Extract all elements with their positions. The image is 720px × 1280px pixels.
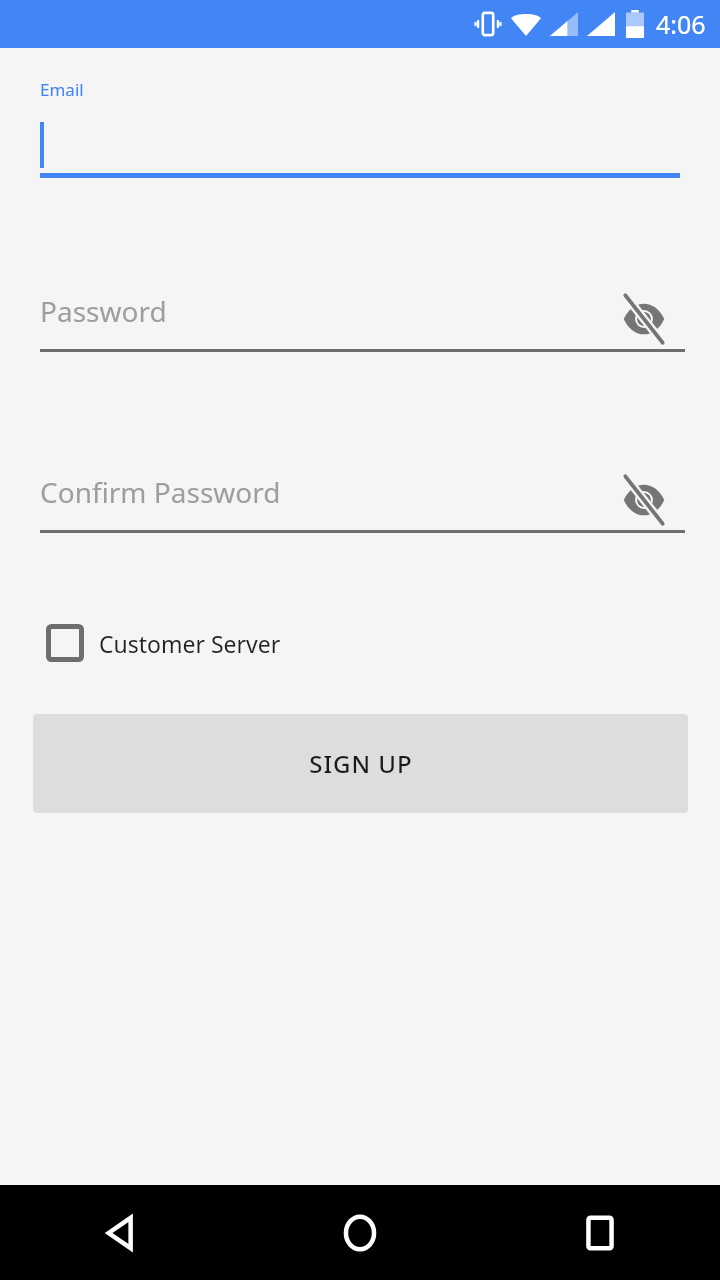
button[interactable]: Home (240, 1185, 480, 1280)
staticText: Email (40, 78, 84, 101)
staticText: Password (40, 292, 167, 330)
button[interactable]: SIGN UP (33, 714, 688, 813)
button[interactable]: Recent apps (480, 1185, 720, 1280)
button[interactable]: Show password (608, 290, 680, 348)
staticText: Confirm Password (40, 473, 281, 511)
button[interactable]: Show confirm password (608, 471, 680, 529)
button[interactable] (40, 112, 680, 178)
staticText: Customer Server (99, 628, 281, 659)
staticText: 4:06 (656, 7, 706, 41)
button[interactable]: Back (0, 1185, 240, 1280)
button[interactable]: Customer Server (40, 614, 295, 672)
staticText: SIGN UP (309, 747, 413, 780)
button[interactable]: Confirm Password (40, 473, 685, 533)
button[interactable]: Password (40, 292, 685, 352)
